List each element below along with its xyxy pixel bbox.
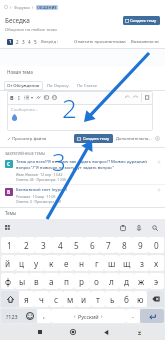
button[interactable]: ч [34, 291, 49, 307]
button[interactable]: к [44, 255, 59, 271]
button[interactable]: Back [99, 325, 113, 339]
button[interactable]: ф [1, 273, 15, 289]
staticText: Отметить прочитанными [74, 39, 126, 45]
staticText: Возможности [131, 39, 159, 45]
staticText: 2 [62, 90, 77, 125]
button[interactable]: , [37, 309, 51, 323]
button[interactable]: 4 [52, 237, 68, 253]
button[interactable]: ц [15, 255, 29, 271]
staticText: г [95, 258, 99, 269]
button[interactable]: От Обсуждения [4, 81, 43, 90]
button[interactable]: х [149, 255, 164, 271]
button[interactable]: ш [104, 255, 119, 271]
button[interactable]: C [0, 158, 165, 183]
button[interactable]: о [89, 273, 104, 289]
button[interactable]: г [89, 255, 104, 271]
button[interactable]: По Опросу [43, 81, 73, 90]
staticText: х [154, 258, 159, 269]
button[interactable]: ?123 [1, 309, 23, 323]
staticText: у [34, 258, 39, 269]
button[interactable] [147, 291, 164, 307]
button[interactable]: Search [150, 223, 160, 233]
button[interactable]: м [63, 291, 77, 307]
button[interactable]: ь [105, 291, 119, 307]
button[interactable]: щ [119, 255, 134, 271]
staticText: с [54, 294, 59, 305]
button[interactable]: у [29, 255, 44, 271]
button[interactable]: п [59, 273, 74, 289]
button[interactable]: р [74, 273, 89, 289]
button[interactable]: н [74, 255, 89, 271]
button[interactable]: Создать тему [74, 134, 113, 143]
staticText: Ответы: 45 · Просмотры: 1 230 [16, 177, 66, 182]
button[interactable]: з [134, 255, 149, 271]
staticText: в [34, 276, 39, 287]
button[interactable]: 1 [7, 39, 13, 45]
button[interactable]: Keyboard layouts [3, 223, 12, 232]
button[interactable]: Recents [33, 325, 47, 339]
button[interactable]: с [49, 291, 63, 307]
staticText: ц [19, 258, 25, 269]
button[interactable]: ж [134, 273, 149, 289]
staticText: Просмотр файла [12, 136, 47, 142]
button[interactable]: Voice input [134, 223, 144, 233]
staticText: ы [19, 276, 26, 287]
button[interactable]: Hide keyboard [132, 325, 146, 339]
button[interactable]: е [59, 255, 74, 271]
button[interactable]: 1 [1, 237, 18, 253]
button[interactable]: 9 [132, 237, 148, 253]
button[interactable] [23, 309, 37, 323]
button[interactable]: 7 [100, 237, 116, 253]
button[interactable]: 0 [148, 237, 164, 253]
staticText: По Статье [77, 83, 98, 89]
button[interactable] [140, 309, 164, 323]
staticText: 3 [52, 145, 66, 178]
button[interactable]: Clipboard [118, 223, 128, 233]
staticText: ч [39, 294, 44, 305]
button[interactable]: . [126, 309, 140, 323]
staticText: э [154, 276, 159, 287]
button[interactable]: д [119, 273, 134, 289]
staticText: щ [123, 258, 131, 269]
button[interactable]: ю [133, 291, 147, 307]
button[interactable]: й [1, 255, 15, 271]
button[interactable]: а [44, 273, 59, 289]
staticText: Банковский слет (курсы) [16, 187, 67, 193]
button[interactable]: ы [15, 273, 29, 289]
button[interactable]: Создать тему [123, 16, 160, 25]
staticText: 0 [154, 240, 159, 251]
staticText: б [124, 294, 129, 305]
button[interactable]: 6 [84, 237, 100, 253]
staticText: и [81, 294, 87, 305]
staticText: о [94, 276, 99, 287]
button[interactable]: и [77, 291, 91, 307]
button[interactable]: я [19, 291, 34, 307]
staticText: м [67, 294, 74, 305]
staticText: Тема для всех!?Я не знаю как задать вопр… [16, 159, 147, 165]
button[interactable]: в [29, 273, 44, 289]
staticText: 1 [9, 39, 12, 45]
staticText: 8 [122, 240, 127, 251]
button[interactable]: 3 [35, 237, 52, 253]
button[interactable]: 5 [68, 237, 84, 253]
staticText: C [7, 161, 11, 168]
staticText: 9 [138, 240, 143, 251]
button[interactable] [1, 291, 19, 307]
staticText: н [79, 258, 85, 269]
staticText: 2 [16, 39, 19, 45]
button[interactable]: Б [0, 186, 165, 205]
button[interactable]: б [119, 291, 133, 307]
button[interactable]: Home [66, 325, 80, 339]
staticText: ж [138, 276, 145, 287]
button[interactable]: По Статье [73, 81, 102, 90]
button[interactable]: т [91, 291, 105, 307]
staticText: Создать тему [130, 18, 157, 23]
staticText: й [5, 258, 11, 269]
staticText: › [101, 313, 103, 320]
button[interactable]: ‹ [51, 309, 126, 323]
button[interactable]: э [149, 273, 164, 289]
button[interactable]: 2 [18, 237, 35, 253]
button[interactable]: л [104, 273, 119, 289]
staticText: ь [110, 294, 115, 305]
button[interactable]: 8 [116, 237, 132, 253]
